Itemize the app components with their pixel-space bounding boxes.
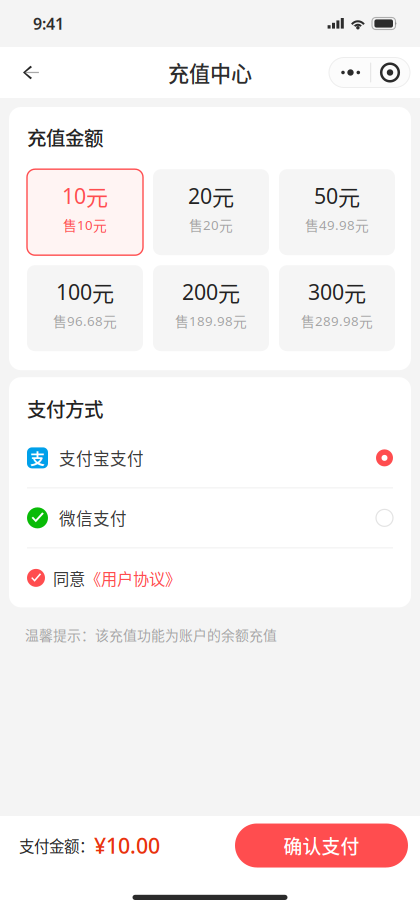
staticText: 确认支付 <box>283 832 359 859</box>
staticText: 100 <box>56 278 92 306</box>
staticText: 9:41 <box>33 13 64 34</box>
button[interactable]: Back <box>9 50 53 94</box>
staticText: 元 <box>344 276 366 308</box>
staticText: 售 <box>301 311 315 331</box>
staticText: 20 <box>188 182 212 210</box>
staticText: ¥ <box>94 831 106 860</box>
staticText: 49.98 <box>319 216 355 234</box>
staticText: 元 <box>359 311 373 331</box>
staticText: 20 <box>203 216 219 234</box>
staticText: 售 <box>175 311 189 331</box>
button[interactable]: 10 <box>27 169 143 255</box>
staticText: 《用户协议》 <box>85 566 181 590</box>
staticText: 10 <box>77 216 93 234</box>
staticText: 元 <box>218 276 240 308</box>
staticText: 元 <box>93 215 107 235</box>
button[interactable]: 50 <box>279 169 395 255</box>
staticText: 10.00 <box>106 831 160 860</box>
staticText: 售 <box>63 215 77 235</box>
button[interactable]: 20 <box>153 169 269 255</box>
staticText: 售 <box>53 311 67 331</box>
button[interactable]: 同意 <box>27 548 393 607</box>
staticText: 300 <box>308 278 344 306</box>
staticText: 元 <box>92 276 114 308</box>
staticText: 温馨提示：该充值功能为账户的余额充值 <box>25 624 277 644</box>
staticText: 元 <box>219 215 233 235</box>
button[interactable]: 200 <box>153 265 269 351</box>
button[interactable]: 100 <box>27 265 143 351</box>
staticText: 支付方式 <box>27 394 103 422</box>
staticText: 售 <box>189 215 203 235</box>
staticText: 微信支付 <box>59 506 127 530</box>
staticText: 元 <box>103 311 117 331</box>
button[interactable]: More options <box>329 57 410 87</box>
staticText: 同意 <box>53 566 85 590</box>
button[interactable]: 支 <box>27 428 393 487</box>
staticText: 289.98 <box>315 312 359 330</box>
button[interactable]: 微信支付 <box>27 488 393 547</box>
staticText: 支付宝支付 <box>59 446 144 470</box>
staticText: 支付金额： <box>19 834 94 857</box>
staticText: 元 <box>86 180 108 212</box>
staticText: 充值金额 <box>27 123 103 151</box>
staticText: 96.68 <box>67 312 103 330</box>
staticText: 元 <box>355 215 369 235</box>
button[interactable]: 300 <box>279 265 395 351</box>
staticText: 10 <box>62 182 86 210</box>
staticText: 售 <box>305 215 319 235</box>
staticText: 元 <box>338 180 360 212</box>
staticText: 189.98 <box>189 312 233 330</box>
button[interactable]: 确认支付 <box>235 823 408 867</box>
staticText: 200 <box>182 278 218 306</box>
staticText: 元 <box>233 311 247 331</box>
staticText: 元 <box>212 180 234 212</box>
staticText: 支 <box>30 447 45 468</box>
staticText: 充值中心 <box>168 57 252 88</box>
staticText: 50 <box>314 182 338 210</box>
